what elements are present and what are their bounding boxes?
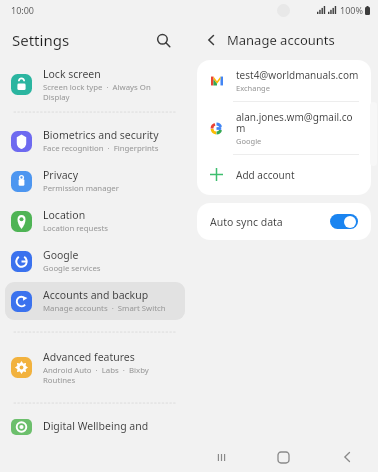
staticText: Biometrics and security — [43, 128, 159, 142]
staticText: Face recognition · Fingerprints — [43, 143, 159, 154]
staticText: Google services — [43, 263, 101, 274]
button[interactable]: Add account — [197, 155, 371, 195]
button[interactable]: alan.jones.wm@gmail.com — [197, 102, 371, 154]
staticText: Add account — [236, 168, 295, 182]
button[interactable]: Recents — [190, 442, 252, 472]
button[interactable]: Auto sync data toggle — [330, 214, 358, 229]
button[interactable]: Home — [252, 442, 315, 472]
button[interactable]: test4@worldmanuals.com — [197, 60, 371, 101]
staticText: Location requests — [43, 223, 109, 234]
button[interactable]: Lock screen — [5, 61, 185, 108]
staticText: Settings — [12, 30, 70, 50]
staticText: Privacy — [43, 168, 79, 182]
button[interactable]: Back — [315, 442, 378, 472]
button[interactable]: Back — [198, 27, 224, 53]
staticText: Location — [43, 208, 86, 222]
button[interactable]: Digital Wellbeing and parental controls — [5, 413, 185, 441]
staticText: Manage accounts — [227, 31, 335, 49]
staticText: Auto sync data — [210, 215, 283, 229]
staticText: Accounts and backup — [43, 288, 149, 302]
staticText: Digital Wellbeing and parental controls — [43, 419, 177, 435]
button[interactable]: Search — [148, 25, 178, 55]
button[interactable]: Advanced features — [5, 344, 185, 391]
staticText: 100% — [340, 4, 363, 16]
staticText: Permission manager — [43, 183, 119, 194]
staticText: Google — [236, 136, 262, 146]
staticText: Lock screen — [43, 67, 101, 81]
staticText: Android Auto · Labs · Bixby Routines — [43, 365, 177, 385]
button[interactable]: Accounts and backup — [5, 282, 185, 320]
staticText: Screen lock type · Always On Display — [43, 82, 177, 102]
staticText: 10:00 — [11, 4, 35, 16]
staticText: alan.jones.wm@gmail.com — [236, 110, 361, 135]
button[interactable]: Auto sync data — [197, 203, 371, 240]
staticText: test4@worldmanuals.com — [236, 68, 359, 82]
staticText: Exchange — [236, 83, 270, 93]
button[interactable]: Location — [5, 202, 185, 240]
button[interactable]: Biometrics and security — [5, 122, 185, 160]
staticText: Manage accounts · Smart Switch — [43, 303, 166, 314]
staticText: Google — [43, 248, 79, 262]
button[interactable]: Google — [5, 242, 185, 280]
button[interactable]: Privacy — [5, 162, 185, 200]
staticText: Advanced features — [43, 350, 135, 364]
